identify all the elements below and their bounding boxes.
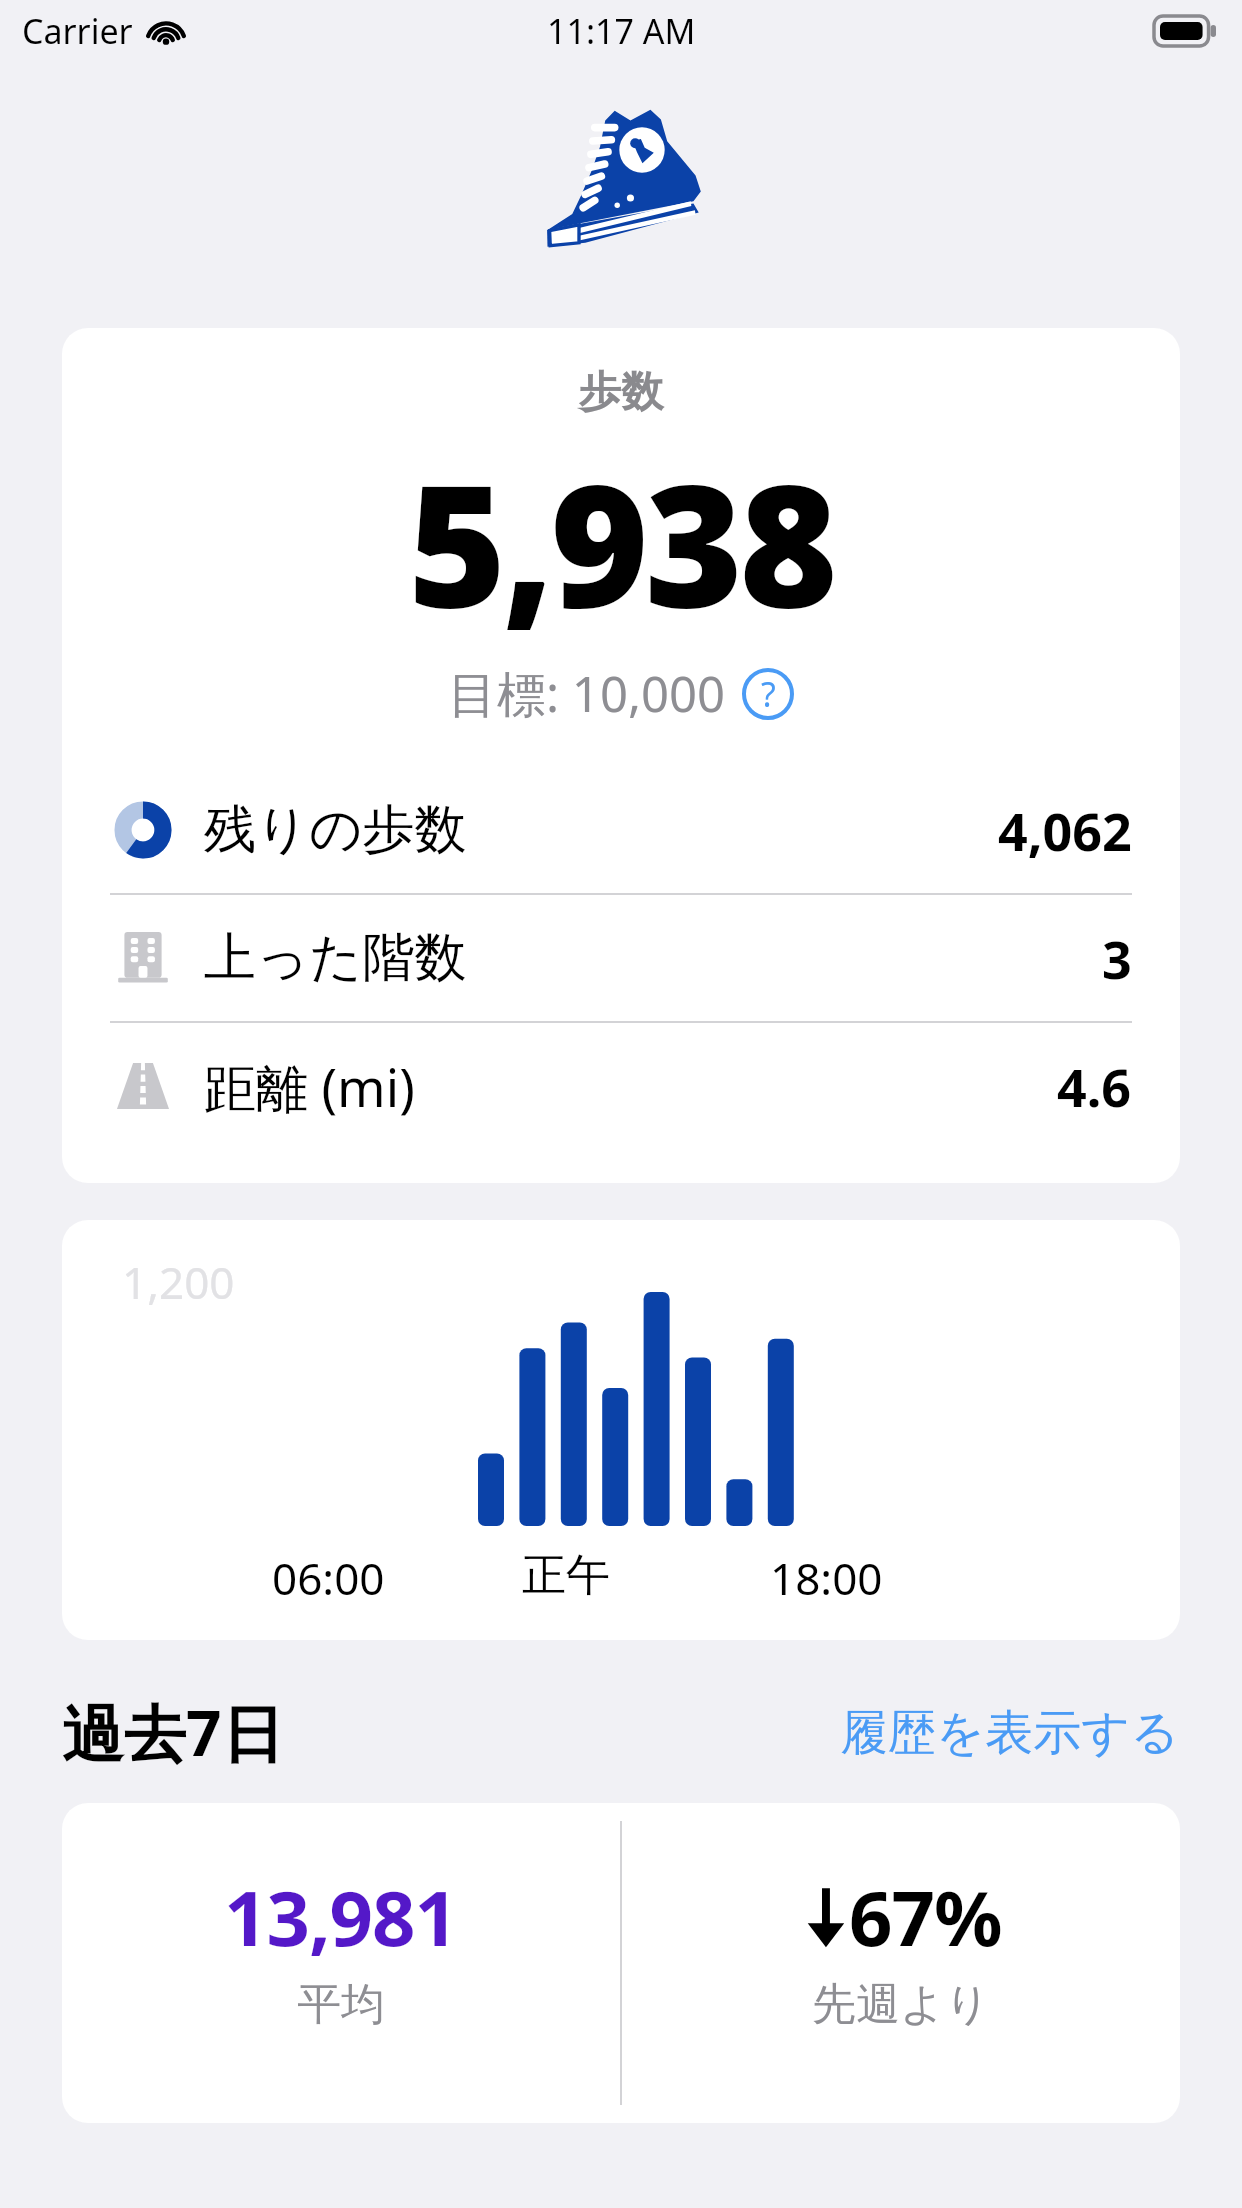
staticText: 目標: 10,000 [448,660,726,727]
staticText: 4,062 [998,795,1132,866]
staticText: 3 [1102,923,1132,994]
button[interactable]: Down [622,1803,1180,2123]
staticText: 歩数 [579,366,663,419]
other: Shoe [516,102,726,262]
button[interactable]: 残りの歩数 [62,767,1180,893]
button[interactable]: 距離 (mi) [62,1023,1180,1149]
staticText: 1,200 [122,1252,235,1312]
staticText: 残りの歩数 [204,797,467,863]
staticText: 上った階数 [204,925,467,991]
staticText: ? [761,671,776,717]
button[interactable]: 上った階数 [62,895,1180,1021]
staticText: 履歴を表示する [840,1703,1180,1763]
other: Down [801,1881,849,1953]
button[interactable]: 履歴を表示する [840,1703,1180,1763]
staticText: 67% [849,1865,1002,1969]
staticText: 11:17 AM [547,8,696,54]
staticText: 4.6 [1057,1051,1132,1122]
button[interactable]: Help about step goal [742,668,794,720]
staticText: 距離 (mi) [204,1051,415,1122]
staticText: Carrier [22,8,133,54]
staticText: 13,981 [224,1865,458,1969]
staticText: 5,938 [408,427,834,656]
staticText: 平均 [297,1977,385,2032]
staticText: 18:00 [770,1548,883,1608]
staticText: 過去7日 [62,1690,284,1775]
button[interactable]: 1,200 [62,1220,1180,1640]
staticText: 06:00 [272,1548,522,1608]
staticText: 先週より [812,1977,991,2032]
button[interactable]: 13,981 [62,1803,620,2123]
staticText: 正午 [522,1548,770,1603]
